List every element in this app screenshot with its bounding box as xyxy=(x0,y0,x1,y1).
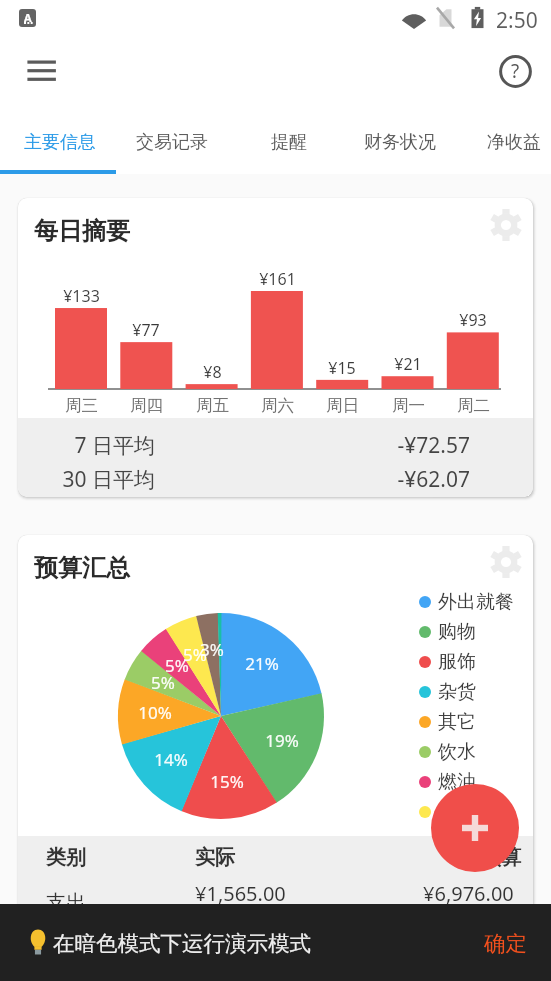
staticText: ¥8 xyxy=(203,361,222,383)
staticText: 其它 xyxy=(438,710,476,734)
staticText: 预算 xyxy=(481,845,521,870)
button[interactable]: 每日摘要 xyxy=(18,198,533,497)
staticText: 日用 xyxy=(438,800,476,824)
staticText: ¥77 xyxy=(132,319,160,341)
staticText: 14% xyxy=(154,748,188,771)
staticText: ¥6,976.00 xyxy=(423,880,514,907)
staticText: 周一 xyxy=(392,395,425,416)
staticText: 周五 xyxy=(196,395,229,416)
button[interactable]: 财务状况 xyxy=(344,110,456,174)
staticText: 燃油 xyxy=(438,770,476,794)
staticText: 杂货 xyxy=(438,680,476,704)
staticText: A xyxy=(24,10,32,25)
button[interactable]: 预算汇总 xyxy=(18,535,533,935)
staticText: 提醒 xyxy=(271,131,307,154)
staticText: 主要信息 xyxy=(24,131,96,154)
staticText: ¥15 xyxy=(328,357,356,379)
staticText: 7 日平均 xyxy=(74,431,155,460)
staticText: 周六 xyxy=(261,395,294,416)
staticText: ? xyxy=(511,58,520,84)
staticText: 周四 xyxy=(130,395,163,416)
staticText: 支出 xyxy=(46,890,86,915)
staticText: 购物 xyxy=(438,620,476,644)
staticText: 净收益 xyxy=(487,131,541,154)
staticText: 19% xyxy=(265,729,299,752)
staticText: -¥72.57 xyxy=(397,431,470,460)
staticText: 10% xyxy=(138,701,172,724)
staticText: 5% xyxy=(165,654,189,677)
button[interactable]: 提醒 xyxy=(244,110,334,174)
staticText: 周日 xyxy=(326,395,359,416)
button[interactable]: 主要信息 xyxy=(0,110,120,174)
button[interactable]: 确定 xyxy=(470,920,540,966)
staticText: 30 日平均 xyxy=(62,465,155,494)
button[interactable]: Menu xyxy=(18,46,66,94)
button[interactable]: 净收益 xyxy=(460,110,551,174)
staticText: ¥21 xyxy=(394,353,422,375)
staticText: 15% xyxy=(210,770,244,793)
button[interactable]: 交易记录 xyxy=(120,110,224,174)
staticText: ¥93 xyxy=(459,309,487,331)
staticText: 饮水 xyxy=(438,740,476,764)
staticText: 周二 xyxy=(457,395,490,416)
staticText: 预算汇总 xyxy=(34,553,130,583)
staticText: 类别 xyxy=(46,845,86,870)
staticText: ¥133 xyxy=(63,285,100,307)
staticText: 交易记录 xyxy=(136,131,208,154)
staticText: 5% xyxy=(151,671,175,694)
staticText: ¥1,565.00 xyxy=(195,880,286,907)
staticText: 周三 xyxy=(65,395,98,416)
staticText: 在暗色模式下运行演示模式 xyxy=(53,930,311,957)
staticText: 3% xyxy=(200,638,224,661)
staticText: 5% xyxy=(183,643,207,666)
staticText: 2:50 xyxy=(496,6,538,35)
staticText: 外出就餐 xyxy=(438,590,514,614)
staticText: 实际 xyxy=(195,845,235,870)
staticText: -¥62.07 xyxy=(397,465,470,494)
staticText: 21% xyxy=(245,652,279,675)
staticText: 确定 xyxy=(484,930,527,957)
staticText: ¥161 xyxy=(259,268,296,290)
staticText: 每日摘要 xyxy=(34,216,130,246)
button[interactable]: Add xyxy=(431,784,519,872)
button[interactable]: Help xyxy=(491,47,539,95)
staticText: 服饰 xyxy=(438,650,476,674)
staticText: 财务状况 xyxy=(364,131,436,154)
